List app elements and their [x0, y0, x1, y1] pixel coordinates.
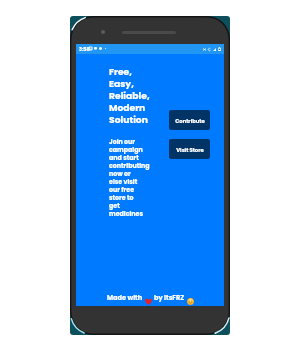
button[interactable]: Visit Store	[169, 139, 210, 159]
staticText: Free, Easy, Reliable, Modern Solution	[109, 65, 150, 126]
staticText: Contribute	[175, 117, 205, 124]
staticText: Join our campaign and start contributing…	[109, 137, 150, 218]
staticText: Made with	[107, 293, 143, 302]
staticText: by ItsFRZ	[154, 293, 185, 302]
staticText: Visit Store	[176, 146, 204, 153]
staticText: 3:58	[79, 46, 90, 53]
button[interactable]: Contribute	[169, 110, 210, 130]
